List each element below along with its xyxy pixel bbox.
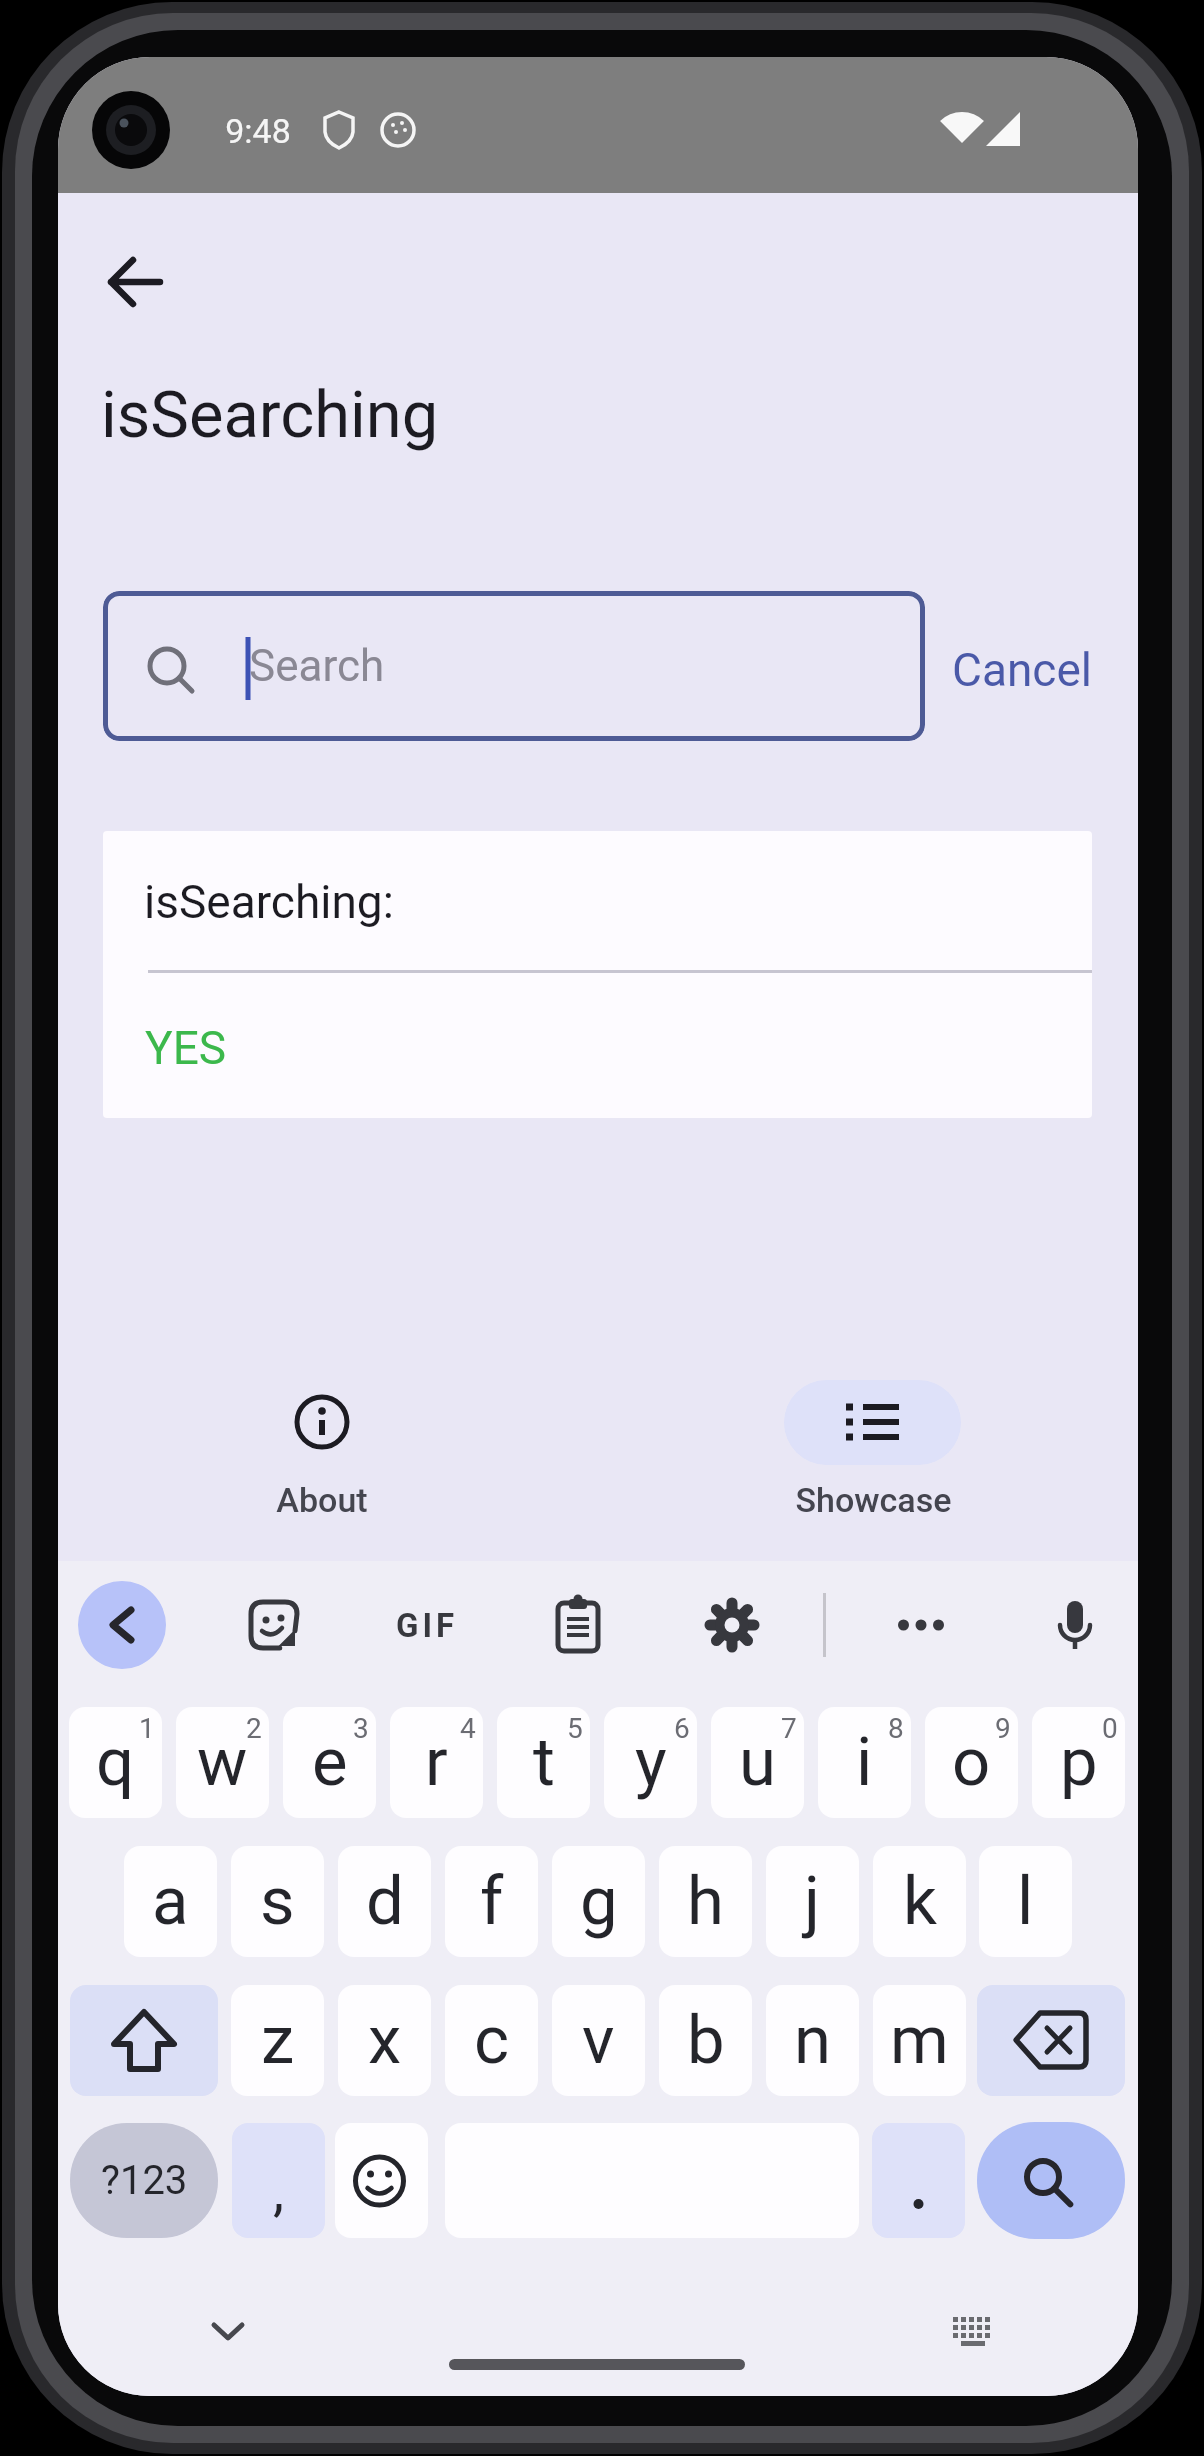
button[interactable]: v xyxy=(552,1985,645,2096)
staticText: , xyxy=(273,2158,285,2224)
staticText: 7 xyxy=(781,1712,797,1745)
staticText: r xyxy=(425,1723,448,1802)
staticText: 1 xyxy=(139,1712,155,1745)
staticText: a xyxy=(152,1862,189,1941)
staticText: e xyxy=(312,1723,348,1802)
button[interactable]: x xyxy=(338,1985,431,2096)
staticText: Search xyxy=(249,640,385,692)
staticText: f xyxy=(480,1862,504,1941)
staticText: 9 xyxy=(995,1712,1011,1745)
staticText: 2 xyxy=(246,1712,262,1745)
button[interactable]: s xyxy=(231,1846,324,1957)
button[interactable]: m xyxy=(873,1985,966,2096)
staticText: 4 xyxy=(460,1712,476,1745)
button[interactable] xyxy=(534,1581,622,1669)
staticText: t xyxy=(533,1723,555,1802)
button[interactable]: n xyxy=(766,1985,859,2096)
button[interactable] xyxy=(933,2297,1013,2367)
button[interactable] xyxy=(95,242,175,322)
staticText: YES xyxy=(145,1021,227,1075)
button[interactable]: k xyxy=(873,1846,966,1957)
button[interactable]: w xyxy=(176,1707,269,1818)
button[interactable]: t xyxy=(497,1707,590,1818)
button[interactable] xyxy=(70,1985,218,2096)
button[interactable]: Cancel xyxy=(932,620,1112,720)
staticText: p xyxy=(1060,1723,1098,1802)
staticText: 3 xyxy=(353,1712,369,1745)
staticText: Showcase xyxy=(795,1480,952,1520)
staticText: 8 xyxy=(888,1712,904,1745)
button[interactable]: ?123 xyxy=(70,2123,218,2238)
button[interactable] xyxy=(977,1985,1125,2096)
staticText: w xyxy=(197,1723,248,1802)
button[interactable]: f xyxy=(445,1846,538,1957)
staticText: GIF xyxy=(396,1606,459,1645)
button[interactable]: j xyxy=(766,1846,859,1957)
staticText: z xyxy=(261,2001,295,2080)
staticText: 0 xyxy=(1102,1712,1118,1745)
staticText: o xyxy=(952,1723,991,1802)
staticText: s xyxy=(260,1862,295,1941)
button[interactable]: , xyxy=(232,2123,325,2238)
staticText: About xyxy=(276,1480,368,1520)
button[interactable]: GIF xyxy=(383,1581,471,1669)
button[interactable]: u xyxy=(711,1707,804,1818)
button[interactable]: z xyxy=(231,1985,324,2096)
button[interactable] xyxy=(977,2122,1125,2239)
staticText: q xyxy=(96,1723,135,1802)
staticText: ?123 xyxy=(101,2157,188,2204)
staticText: u xyxy=(739,1723,776,1802)
button[interactable] xyxy=(188,2297,268,2367)
button[interactable]: g xyxy=(552,1846,645,1957)
staticText: isSearching xyxy=(101,377,439,453)
button[interactable] xyxy=(335,2123,428,2238)
button[interactable]: r xyxy=(390,1707,483,1818)
staticText: l xyxy=(1017,1862,1034,1941)
staticText: g xyxy=(580,1862,618,1941)
button[interactable] xyxy=(877,1581,965,1669)
button[interactable] xyxy=(872,2123,965,2238)
staticText: c xyxy=(474,2001,510,2080)
button[interactable]: d xyxy=(338,1846,431,1957)
staticText: b xyxy=(687,2001,725,2080)
button[interactable] xyxy=(78,1581,166,1669)
button[interactable]: h xyxy=(659,1846,752,1957)
button[interactable]: o xyxy=(925,1707,1018,1818)
staticText: n xyxy=(794,2001,832,2080)
button[interactable]: l xyxy=(979,1846,1072,1957)
staticText: 5 xyxy=(567,1712,583,1745)
button[interactable]: p xyxy=(1032,1707,1125,1818)
button[interactable]: i xyxy=(818,1707,911,1818)
button[interactable] xyxy=(230,1581,318,1669)
button[interactable]: About xyxy=(212,1380,432,1570)
staticText: i xyxy=(856,1723,873,1802)
staticText: isSearching: xyxy=(144,875,394,929)
button[interactable]: a xyxy=(124,1846,217,1957)
button[interactable]: q xyxy=(69,1707,162,1818)
staticText: j xyxy=(804,1862,821,1941)
button[interactable]: c xyxy=(445,1985,538,2096)
staticText: x xyxy=(368,2001,402,2080)
staticText: Cancel xyxy=(952,643,1093,697)
button[interactable]: y xyxy=(604,1707,697,1818)
staticText: v xyxy=(582,2001,615,2080)
button[interactable]: e xyxy=(283,1707,376,1818)
staticText: 9:48 xyxy=(225,111,291,151)
button[interactable]: Search xyxy=(103,591,925,741)
staticText: k xyxy=(903,1862,937,1941)
button[interactable] xyxy=(688,1581,776,1669)
staticText: y xyxy=(635,1723,667,1802)
staticText: m xyxy=(890,2001,949,2080)
staticText: 6 xyxy=(674,1712,690,1745)
staticText: d xyxy=(366,1862,404,1941)
button[interactable] xyxy=(1031,1581,1119,1669)
button[interactable] xyxy=(784,1380,961,1465)
button[interactable]: b xyxy=(659,1985,752,2096)
staticText: h xyxy=(687,1862,724,1941)
